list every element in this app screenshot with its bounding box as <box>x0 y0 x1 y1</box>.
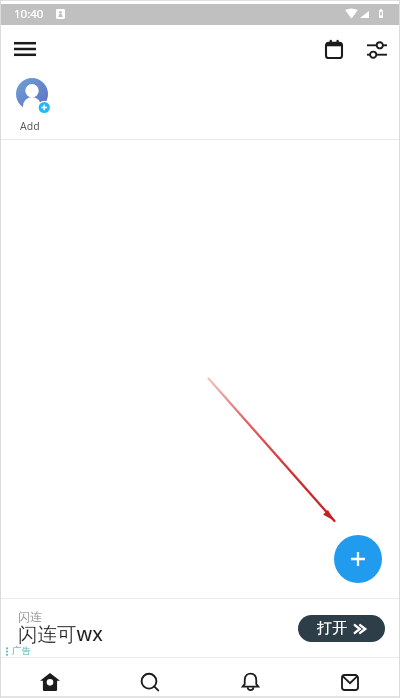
button[interactable]: Add new <box>334 535 382 583</box>
staticText: 闪连 <box>18 609 42 624</box>
button[interactable]: Menu <box>6 30 44 68</box>
staticText: 打开 <box>317 619 347 638</box>
button[interactable]: Home <box>0 657 100 698</box>
staticText: Add <box>20 119 40 133</box>
staticText: 闪连可wx <box>18 620 103 647</box>
staticText: 广告 <box>12 645 31 657</box>
button[interactable]: Settings <box>358 31 396 69</box>
button[interactable]: Calendar <box>315 30 353 68</box>
staticText: 10:40 <box>14 6 44 22</box>
button[interactable]: Mail <box>300 657 400 698</box>
button[interactable]: 打开 <box>298 615 385 642</box>
button[interactable]: Search <box>100 657 200 698</box>
button[interactable]: Add <box>10 74 54 132</box>
button[interactable]: Notifications <box>200 657 300 698</box>
